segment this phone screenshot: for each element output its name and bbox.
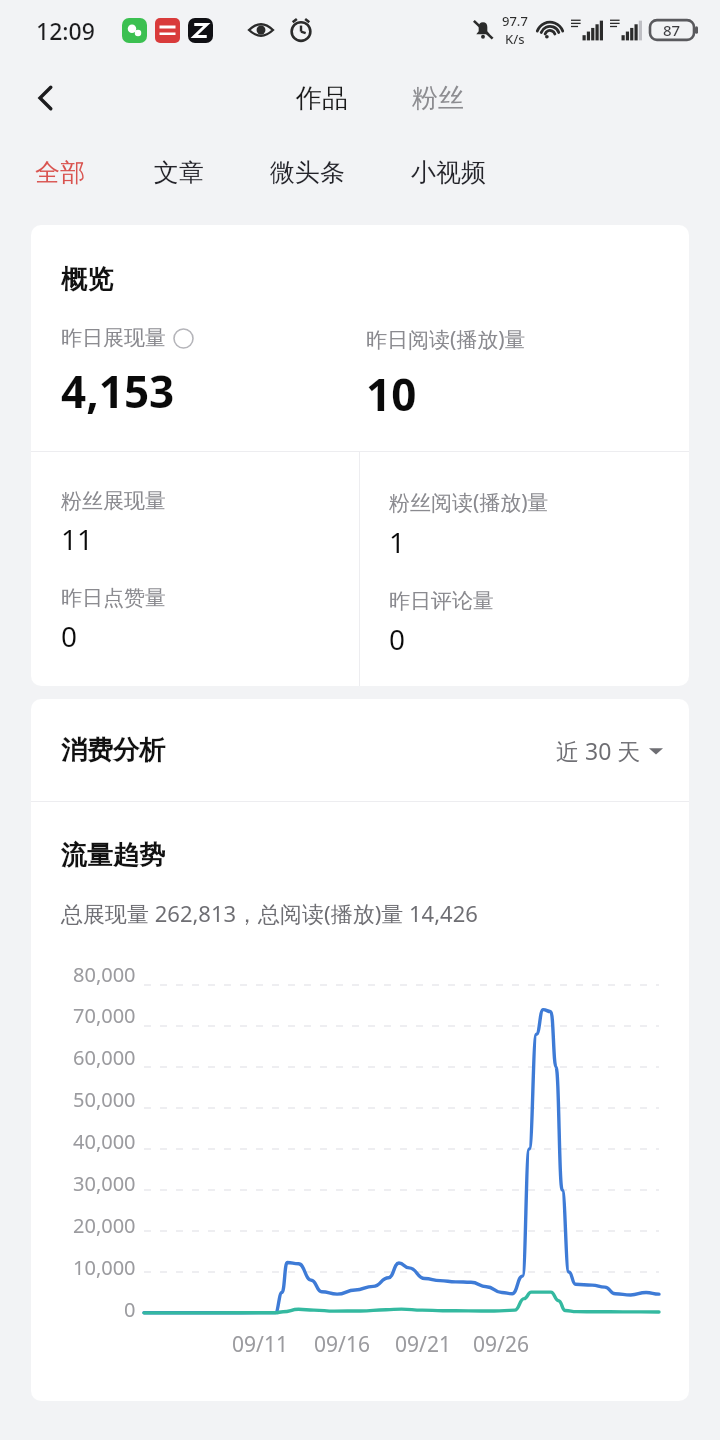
staticText: 0: [389, 620, 406, 658]
button[interactable]: 文章: [152, 147, 206, 198]
staticText: 昨日阅读(播放)量: [366, 325, 526, 354]
staticText: 97.7: [502, 12, 528, 30]
staticText: 80,000: [73, 961, 136, 987]
staticText: 昨日点赞量: [61, 585, 166, 611]
button[interactable]: 粉丝: [406, 76, 470, 121]
staticText: 60,000: [73, 1044, 136, 1071]
staticText: 87: [663, 20, 681, 40]
staticText: 30,000: [73, 1170, 136, 1197]
staticText: 09/11: [232, 1330, 288, 1359]
staticText: 昨日评论量: [389, 588, 494, 614]
staticText: 0: [124, 1296, 136, 1323]
staticText: 粉丝阅读(播放)量: [389, 488, 549, 517]
staticText: 小视频: [411, 157, 486, 188]
staticText: 20,000: [73, 1212, 136, 1239]
staticText: 粉丝: [412, 82, 464, 115]
staticText: 粉丝展现量: [61, 488, 166, 514]
staticText: 总展现量 262,813，总阅读(播放)量 14,426: [61, 898, 478, 928]
staticText: 11: [61, 520, 94, 558]
staticText: 昨日展现量: [61, 325, 166, 351]
staticText: 作品: [296, 82, 348, 115]
staticText: 09/26: [473, 1330, 529, 1359]
staticText: 70,000: [73, 1002, 136, 1029]
staticText: 12:09: [36, 15, 95, 46]
button[interactable]: 小视频: [409, 147, 488, 198]
button[interactable]: 近 30 天: [556, 735, 663, 766]
staticText: 0: [61, 617, 78, 655]
staticText: 近 30 天: [556, 735, 641, 766]
staticText: 文章: [154, 157, 204, 188]
staticText: 09/16: [314, 1330, 370, 1359]
staticText: 1: [389, 523, 406, 561]
staticText: K/s: [505, 30, 525, 48]
staticText: 概览: [61, 263, 113, 296]
staticText: 微头条: [270, 157, 345, 188]
staticText: 50,000: [73, 1086, 136, 1113]
staticText: 40,000: [73, 1128, 136, 1155]
staticText: 10: [366, 364, 417, 424]
button[interactable]: 作品: [290, 76, 354, 121]
staticText: 全部: [35, 157, 85, 188]
staticText: 10,000: [73, 1254, 136, 1281]
button[interactable]: Back: [16, 68, 76, 128]
staticText: 09/21: [395, 1330, 451, 1359]
button[interactable]: 全部: [33, 147, 87, 198]
button[interactable]: 微头条: [268, 147, 347, 198]
staticText: 消费分析: [61, 734, 165, 767]
staticText: 4,153: [61, 361, 175, 421]
staticText: 流量趋势: [61, 839, 165, 872]
